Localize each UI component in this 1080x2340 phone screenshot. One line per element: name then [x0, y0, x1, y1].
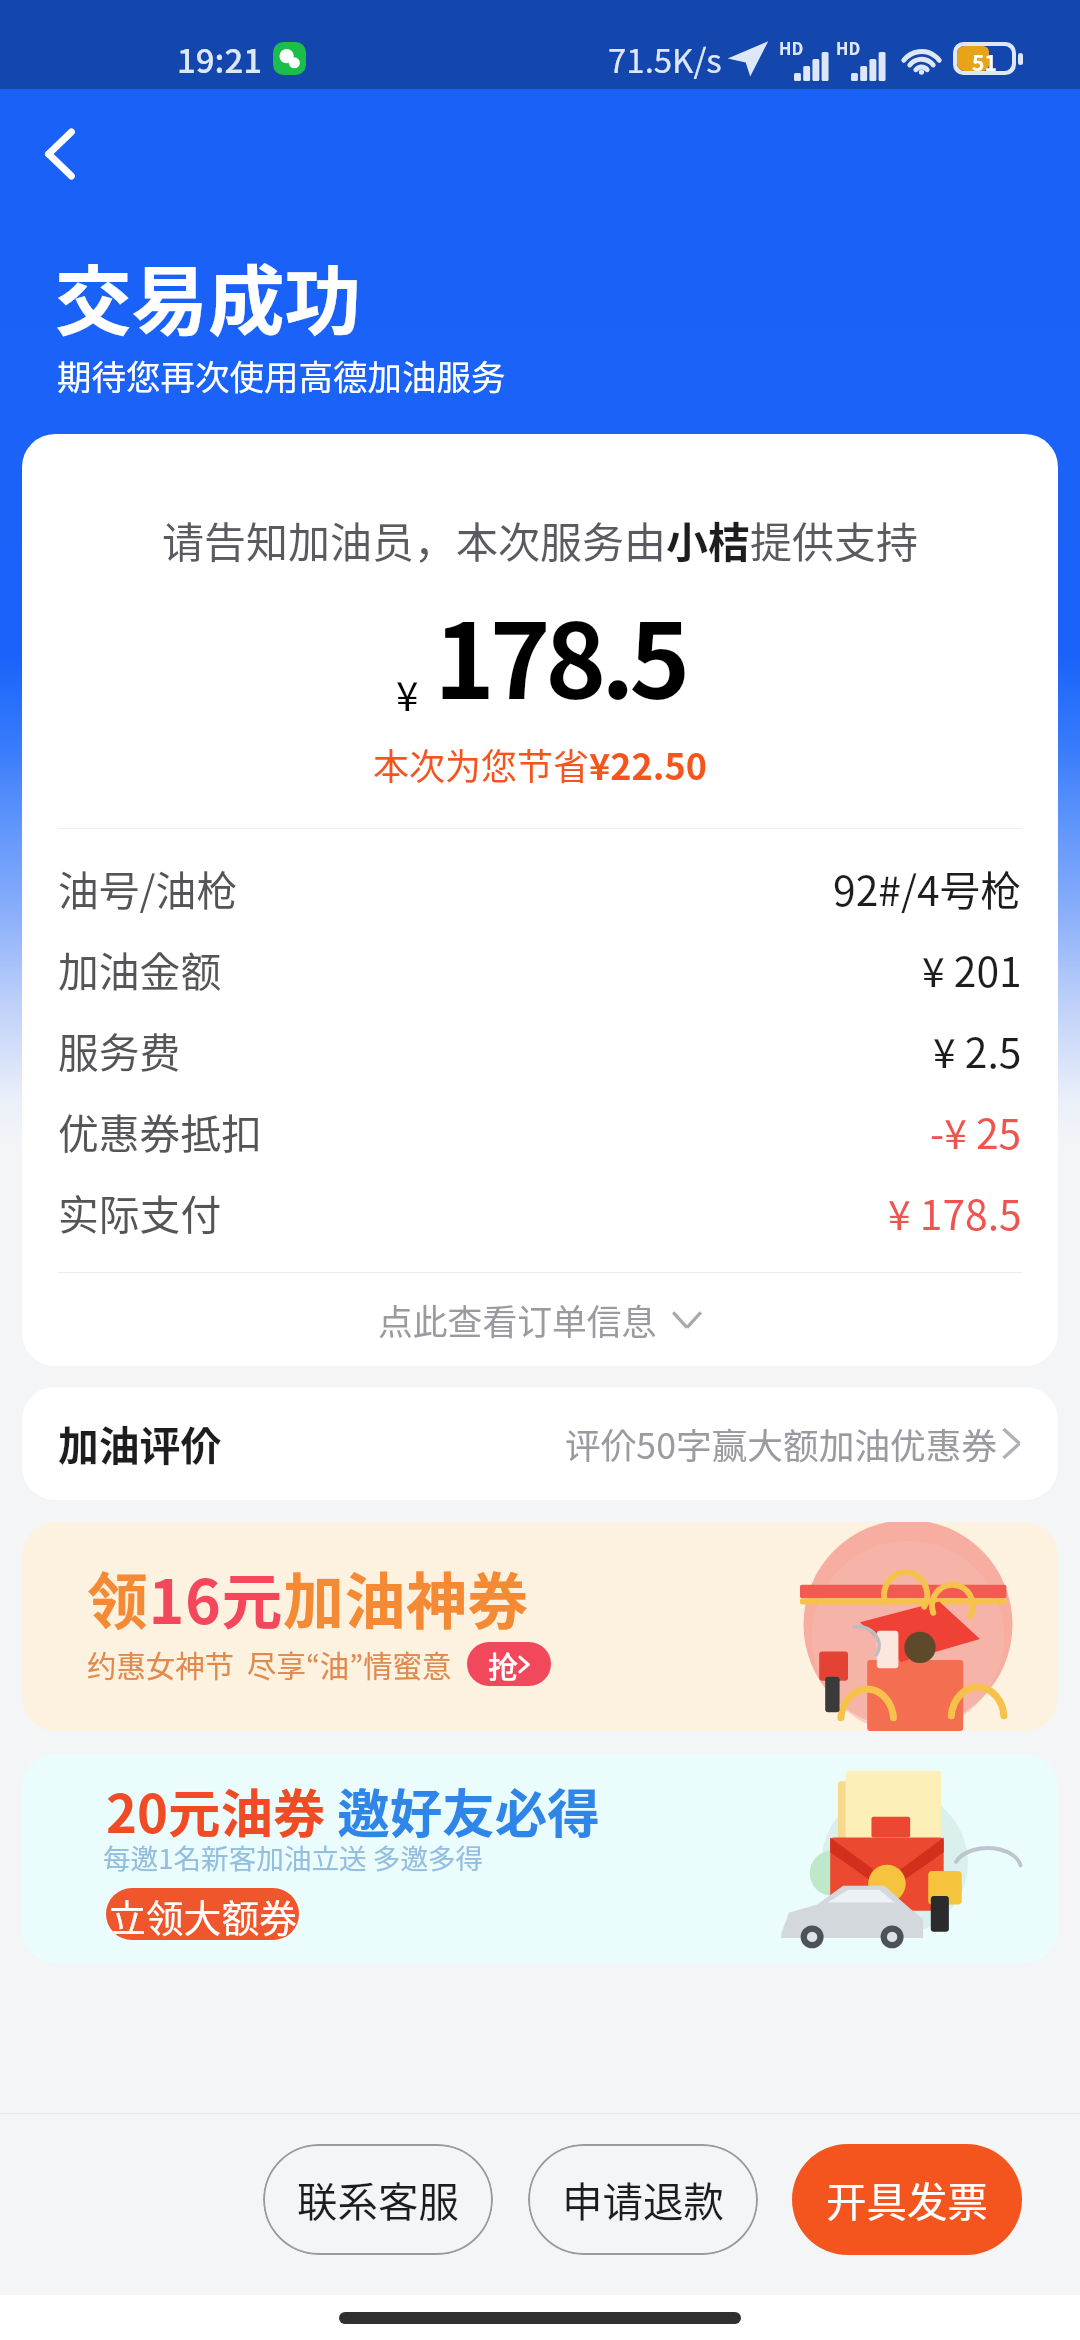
staticText: 20元油券 邀好友必得: [106, 1772, 600, 1848]
staticText: ¥ 178.5: [888, 1183, 1022, 1242]
staticText: 本次为您节省¥22.50: [58, 738, 1022, 790]
staticText: 51: [957, 47, 1012, 71]
staticText: 点此查看订单信息: [378, 1295, 657, 1345]
staticText: 开具发票: [826, 2170, 988, 2229]
staticText: 178.5: [434, 579, 685, 729]
button[interactable]: 加油评价: [22, 1387, 1058, 1500]
button[interactable]: 立领大额券: [106, 1888, 299, 1940]
staticText: 92#/4号枪: [833, 859, 1022, 918]
button[interactable]: Back: [0, 89, 120, 218]
staticText: 抢: [488, 1643, 518, 1686]
staticText: 实际支付: [58, 1183, 222, 1242]
staticText: 联系客服: [297, 2170, 459, 2229]
staticText: -¥ 25: [930, 1102, 1022, 1161]
staticText: 加油金额: [58, 940, 222, 999]
staticText: 约惠女神节 尽享“油”情蜜意: [87, 1643, 452, 1686]
staticText: 领16元加油神券: [87, 1553, 529, 1641]
staticText: 交易成功: [55, 240, 361, 351]
staticText: 优惠券抵扣: [58, 1102, 262, 1161]
staticText: 每邀1名新客加油立送 多邀多得: [103, 1837, 484, 1877]
staticText: 加油评价: [58, 1414, 222, 1473]
button[interactable]: 点此查看订单信息: [58, 1273, 1022, 1366]
button[interactable]: 联系客服: [263, 2144, 493, 2255]
staticText: HD: [779, 36, 804, 60]
staticText: 服务费: [58, 1021, 181, 1080]
staticText: HD: [836, 36, 861, 60]
staticText: 评价50字赢大额加油优惠券: [565, 1418, 998, 1470]
staticText: 油号/油枪: [58, 859, 238, 918]
staticText: ¥ 2.5: [933, 1021, 1022, 1080]
button[interactable]: 领16元加油神券: [22, 1522, 1058, 1731]
staticText: ¥: [396, 664, 419, 723]
staticText: 立领大额券: [108, 1888, 297, 1940]
staticText: ¥ 201: [922, 940, 1022, 999]
staticText: 71.5K/s: [608, 35, 722, 83]
staticText: 期待您再次使用高德加油服务: [57, 350, 506, 400]
button[interactable]: 开具发票: [792, 2144, 1022, 2255]
staticText: 请告知加油员，本次服务由小桔提供支持: [58, 509, 1022, 570]
button[interactable]: 申请退款: [528, 2144, 758, 2255]
staticText: 申请退款: [562, 2170, 724, 2229]
staticText: 19:21: [177, 35, 263, 83]
button[interactable]: 20元油券 邀好友必得: [22, 1754, 1058, 1963]
